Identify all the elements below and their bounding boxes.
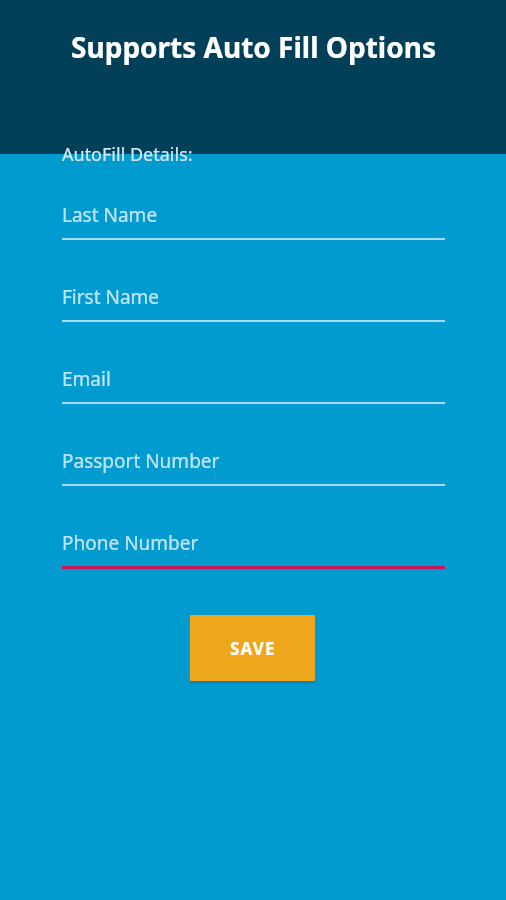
- staticText: SAVE: [230, 637, 276, 660]
- button[interactable]: Save: [190, 615, 315, 681]
- button[interactable]: Passport Number: [62, 442, 445, 486]
- button[interactable]: Phone Number: [62, 524, 445, 569]
- staticText: Phone Number: [62, 530, 199, 556]
- staticText: First Name: [62, 284, 160, 310]
- staticText: Email: [62, 366, 111, 392]
- button[interactable]: Last Name: [62, 196, 445, 240]
- staticText: AutoFill Details:: [62, 142, 193, 167]
- staticText: Last Name: [62, 202, 158, 228]
- button[interactable]: Email: [62, 360, 445, 404]
- staticText: Passport Number: [62, 448, 220, 474]
- button[interactable]: First Name: [62, 278, 445, 322]
- staticText: Supports Auto Fill Options: [71, 28, 436, 66]
